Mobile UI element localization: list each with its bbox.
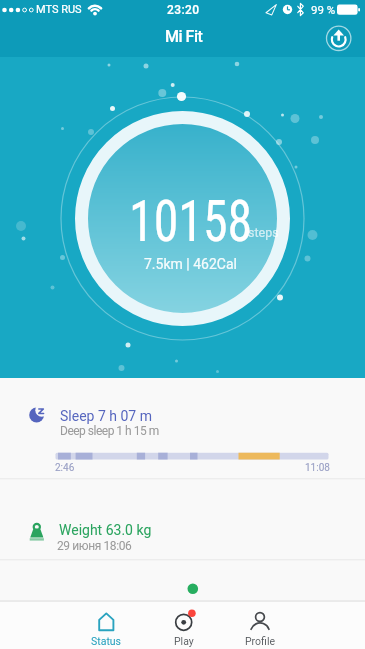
staticText: 23:20	[167, 3, 200, 17]
staticText: Mi Fit	[165, 27, 203, 46]
staticText: Play	[174, 635, 194, 647]
staticText: Profile	[245, 635, 276, 647]
staticText: MTS RUS	[36, 3, 82, 16]
staticText: 99 %	[311, 3, 336, 16]
staticText: Sleep 7 h 07 m	[60, 408, 152, 424]
staticText: Deep sleep 1 h 15 m	[60, 424, 159, 438]
staticText: 2:46	[55, 462, 75, 474]
staticText: steps	[248, 225, 279, 240]
staticText: 10158	[129, 187, 253, 255]
staticText: 11:08	[305, 462, 330, 474]
staticText: Status	[91, 635, 122, 647]
staticText: Weight 63.0 kg	[59, 522, 152, 538]
staticText: 29 июня 18:06	[57, 539, 132, 553]
staticText: 7.5km | 462Cal	[144, 256, 237, 272]
